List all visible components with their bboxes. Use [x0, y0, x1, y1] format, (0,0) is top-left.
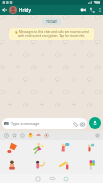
button[interactable]: 🔒 Messages to this chat and calls are no…	[9, 28, 94, 40]
staticText: 🔒 Messages to this chat and calls are no…	[12, 30, 91, 38]
button[interactable]: Sticker pack 4	[42, 131, 50, 140]
button[interactable]: Sticker settings	[93, 131, 101, 140]
button[interactable]: Voice message	[89, 117, 101, 129]
button[interactable]: Call	[87, 5, 96, 15]
button[interactable]: Sticker 3	[51, 140, 77, 157]
button[interactable]: Sticker 8	[77, 157, 103, 174]
button[interactable]: Camera	[79, 121, 85, 127]
button[interactable]: Home	[45, 174, 59, 183]
button[interactable]: Favourites	[10, 131, 18, 140]
button[interactable]: Sticker 2	[25, 140, 51, 157]
staticText: TODAY	[46, 19, 57, 24]
button[interactable]: Sticker pack 3	[34, 131, 42, 140]
button[interactable]: Type a message	[2, 118, 87, 129]
button[interactable]: Sticker 5	[0, 157, 25, 174]
button[interactable]: Attach	[72, 121, 78, 127]
button[interactable]: Sticker 1	[0, 140, 25, 157]
button[interactable]: Sticker 6	[25, 157, 51, 174]
button[interactable]: Sticker pack 2	[26, 131, 34, 140]
button[interactable]: Recent apps	[31, 174, 45, 183]
button[interactable]: Sticker 7	[51, 157, 77, 174]
staticText: Type a message	[11, 121, 40, 126]
button[interactable]: Back	[59, 174, 73, 183]
button[interactable]: Video call	[78, 5, 87, 15]
button[interactable]: Sticker pack	[18, 131, 26, 140]
button[interactable]: Back	[0, 5, 9, 15]
button[interactable]: Sticker 4	[77, 140, 103, 157]
button[interactable]: More options	[96, 5, 103, 15]
staticText: Hridy	[19, 7, 31, 13]
button[interactable]: Hridy	[9, 5, 78, 15]
button[interactable]: Recent	[2, 131, 10, 140]
